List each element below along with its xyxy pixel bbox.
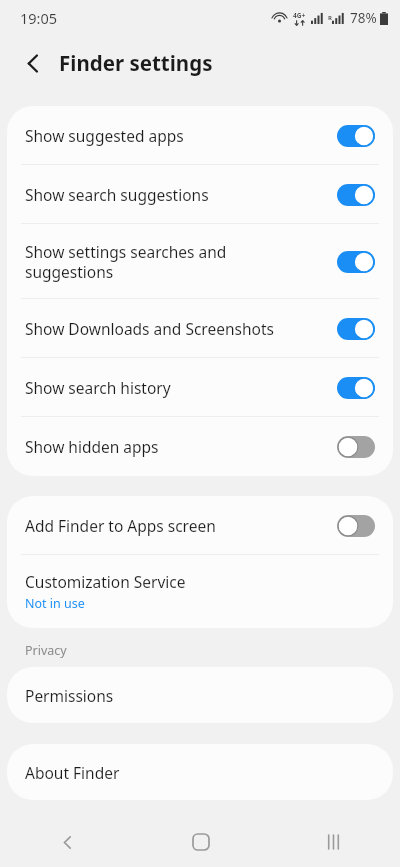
staticText: Show search history (25, 377, 171, 398)
staticText: 19:05 (20, 8, 58, 28)
staticText: Show suggested apps (25, 125, 184, 146)
staticText: Show search suggestions (25, 184, 209, 205)
button[interactable]: Back (0, 817, 134, 867)
button[interactable]: Add Finder to Apps screen (7, 496, 393, 555)
button[interactable]: Show Downloads and Screenshots (7, 299, 393, 358)
staticText: Customization Service (25, 571, 186, 592)
button[interactable]: Show search suggestions (7, 165, 393, 224)
button[interactable]: Show settings searches and suggestions (7, 224, 393, 299)
button[interactable]: Recent apps (267, 817, 400, 867)
staticText: Show Downloads and Screenshots (25, 318, 274, 339)
staticText: Add Finder to Apps screen (25, 515, 216, 536)
staticText: Permissions (25, 685, 114, 706)
staticText: Show hidden apps (25, 436, 159, 457)
button[interactable]: Permissions (7, 667, 393, 723)
button[interactable]: Show hidden apps (7, 417, 393, 476)
button[interactable]: About Finder (7, 744, 393, 800)
staticText: Not in use (25, 595, 85, 612)
staticText: Show settings searches and suggestions (25, 241, 227, 283)
staticText: About Finder (25, 762, 120, 783)
button[interactable]: Show search history (7, 358, 393, 417)
button[interactable]: Show suggested apps (7, 106, 393, 165)
staticText: Privacy (25, 642, 67, 659)
staticText: 4G+ (293, 11, 306, 20)
button[interactable]: Navigate up (16, 46, 50, 80)
button[interactable]: Home (134, 817, 267, 867)
staticText: 78% (350, 9, 377, 27)
staticText: R (328, 14, 332, 22)
staticText: Finder settings (59, 49, 213, 77)
button[interactable]: Customization Service (7, 555, 393, 628)
